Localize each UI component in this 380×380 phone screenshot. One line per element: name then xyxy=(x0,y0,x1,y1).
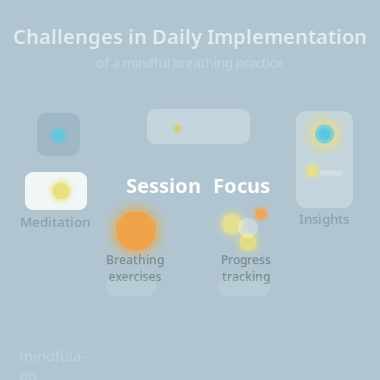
staticText: of a mindful breathing practice xyxy=(96,54,283,71)
button[interactable]: Guided sessions xyxy=(37,113,80,156)
staticText: Session xyxy=(126,172,201,199)
button[interactable]: Daily reminder xyxy=(25,172,87,210)
staticText: Progress xyxy=(221,252,271,267)
staticText: exercises xyxy=(108,268,161,284)
staticText: Breathing xyxy=(106,252,164,267)
staticText: Meditation xyxy=(20,213,90,230)
staticText: Challenges in Daily Implementation xyxy=(13,23,367,50)
staticText: Focus xyxy=(213,172,270,199)
staticText: tracking xyxy=(222,268,270,284)
button[interactable]: Breathing exercise xyxy=(105,200,167,262)
button[interactable]: Insights xyxy=(296,111,353,208)
staticText: mindfulapp xyxy=(19,346,86,380)
staticText: Insights xyxy=(299,210,349,227)
button[interactable]: Progress tracking xyxy=(209,199,275,261)
